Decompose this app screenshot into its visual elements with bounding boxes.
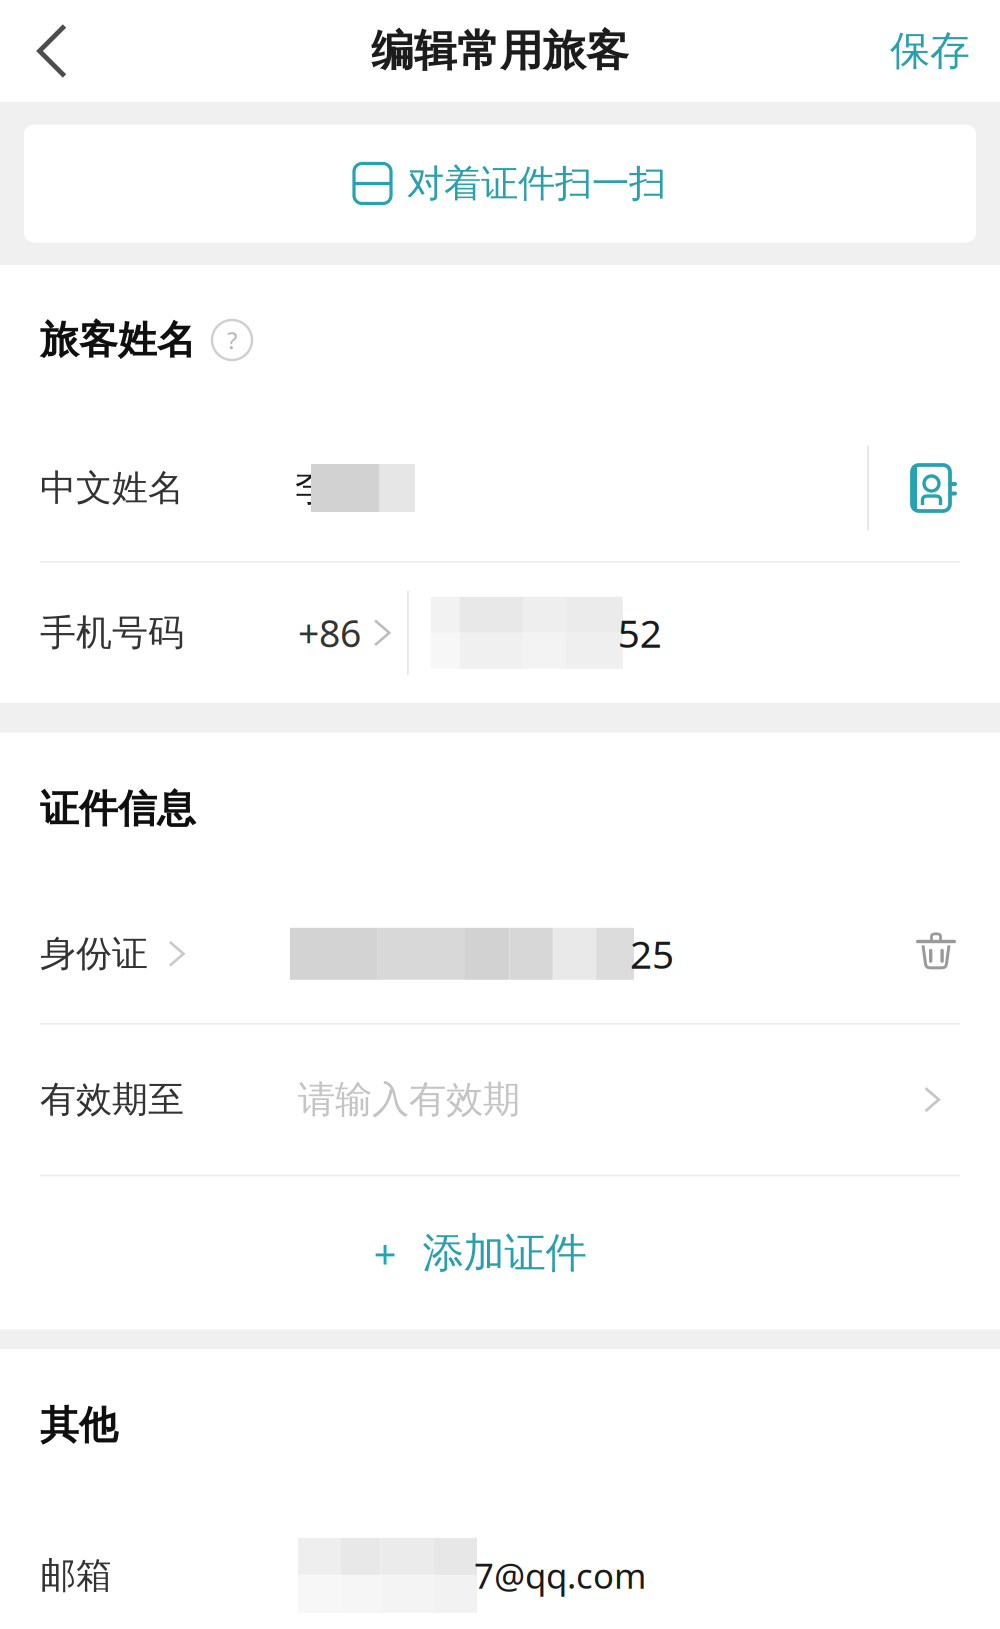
staticText: 旅客姓名 xyxy=(40,316,196,364)
staticText: 添加证件 xyxy=(422,1227,586,1278)
staticText: + xyxy=(373,1226,396,1279)
button[interactable]: 中文姓名 xyxy=(0,415,1000,561)
staticText: 52 xyxy=(618,607,662,658)
button[interactable]: Delete ID xyxy=(916,932,956,976)
staticText: 其他 xyxy=(40,1402,118,1449)
staticText: 李 xyxy=(295,466,331,510)
button[interactable]: 邮箱 xyxy=(0,1501,1000,1629)
staticText: ? xyxy=(227,324,237,356)
staticText: 编辑常用旅客 xyxy=(371,25,629,77)
button[interactable]: 手机号码 xyxy=(0,563,1000,703)
staticText: 25 xyxy=(630,928,674,979)
staticText: 对着证件扫一扫 xyxy=(407,161,666,206)
staticText: 7@qq.com xyxy=(474,1552,646,1598)
button[interactable]: Choose from contacts xyxy=(869,415,1000,561)
button[interactable]: 有效期至 xyxy=(0,1025,1000,1175)
button[interactable]: Back xyxy=(0,0,104,102)
button[interactable]: 保存 xyxy=(860,0,1000,102)
button[interactable]: 对着证件扫一扫 xyxy=(24,124,976,242)
staticText: +86 xyxy=(298,608,361,658)
staticText: 保存 xyxy=(890,26,970,75)
staticText: 请输入有效期 xyxy=(298,1077,520,1123)
staticText: 手机号码 xyxy=(40,611,184,655)
staticText: 中文姓名 xyxy=(40,466,184,510)
staticText: 身份证 xyxy=(40,932,148,976)
button[interactable]: 身份证 xyxy=(0,885,1000,1023)
staticText: 有效期至 xyxy=(40,1077,184,1122)
button[interactable]: + xyxy=(0,1176,1000,1329)
staticText: 证件信息 xyxy=(40,785,196,833)
staticText: 邮箱 xyxy=(40,1553,112,1597)
